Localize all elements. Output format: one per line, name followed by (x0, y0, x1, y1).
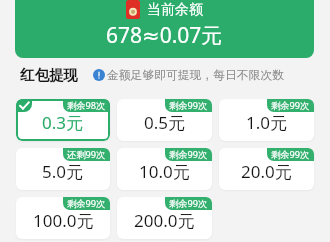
staticText: 剩余99次 (169, 148, 208, 161)
staticText: 678≈0.07元 (106, 21, 223, 50)
staticText: 还剩99次 (67, 148, 106, 161)
staticText: 1.0元 (246, 111, 288, 134)
button[interactable]: 还剩99次 (16, 148, 110, 190)
staticText: 20.0元 (241, 160, 292, 183)
staticText: 剩余99次 (271, 99, 310, 112)
staticText: 5.0元 (42, 160, 84, 183)
staticText: 剩余99次 (271, 148, 310, 161)
staticText: 0.5元 (144, 111, 186, 134)
staticText: 10.0元 (139, 160, 190, 183)
staticText: 金额足够即可提现，每日不限次数 (107, 68, 284, 83)
staticText: 0.3元 (42, 111, 84, 134)
staticText: 当前余额 (147, 1, 203, 19)
button[interactable]: 剩余99次 (219, 99, 314, 141)
staticText: 剩余99次 (169, 197, 208, 210)
staticText: 剩余99次 (169, 99, 208, 112)
other: Red packet (126, 0, 140, 19)
staticText: 红包提现 (20, 66, 78, 84)
staticText: 200.0元 (134, 209, 195, 232)
button[interactable]: 剩余98次 (16, 99, 110, 141)
button[interactable]: 剩余99次 (219, 148, 314, 190)
button[interactable]: Withdrawal rules info (93, 69, 105, 81)
button[interactable]: 剩余99次 (117, 197, 212, 239)
button[interactable]: 剩余99次 (117, 148, 212, 190)
button[interactable]: 剩余99次 (117, 99, 212, 141)
staticText: 剩余99次 (67, 197, 106, 210)
staticText: 剩余98次 (67, 99, 106, 112)
button[interactable]: 剩余99次 (16, 197, 110, 239)
staticText: 100.0元 (33, 209, 94, 232)
